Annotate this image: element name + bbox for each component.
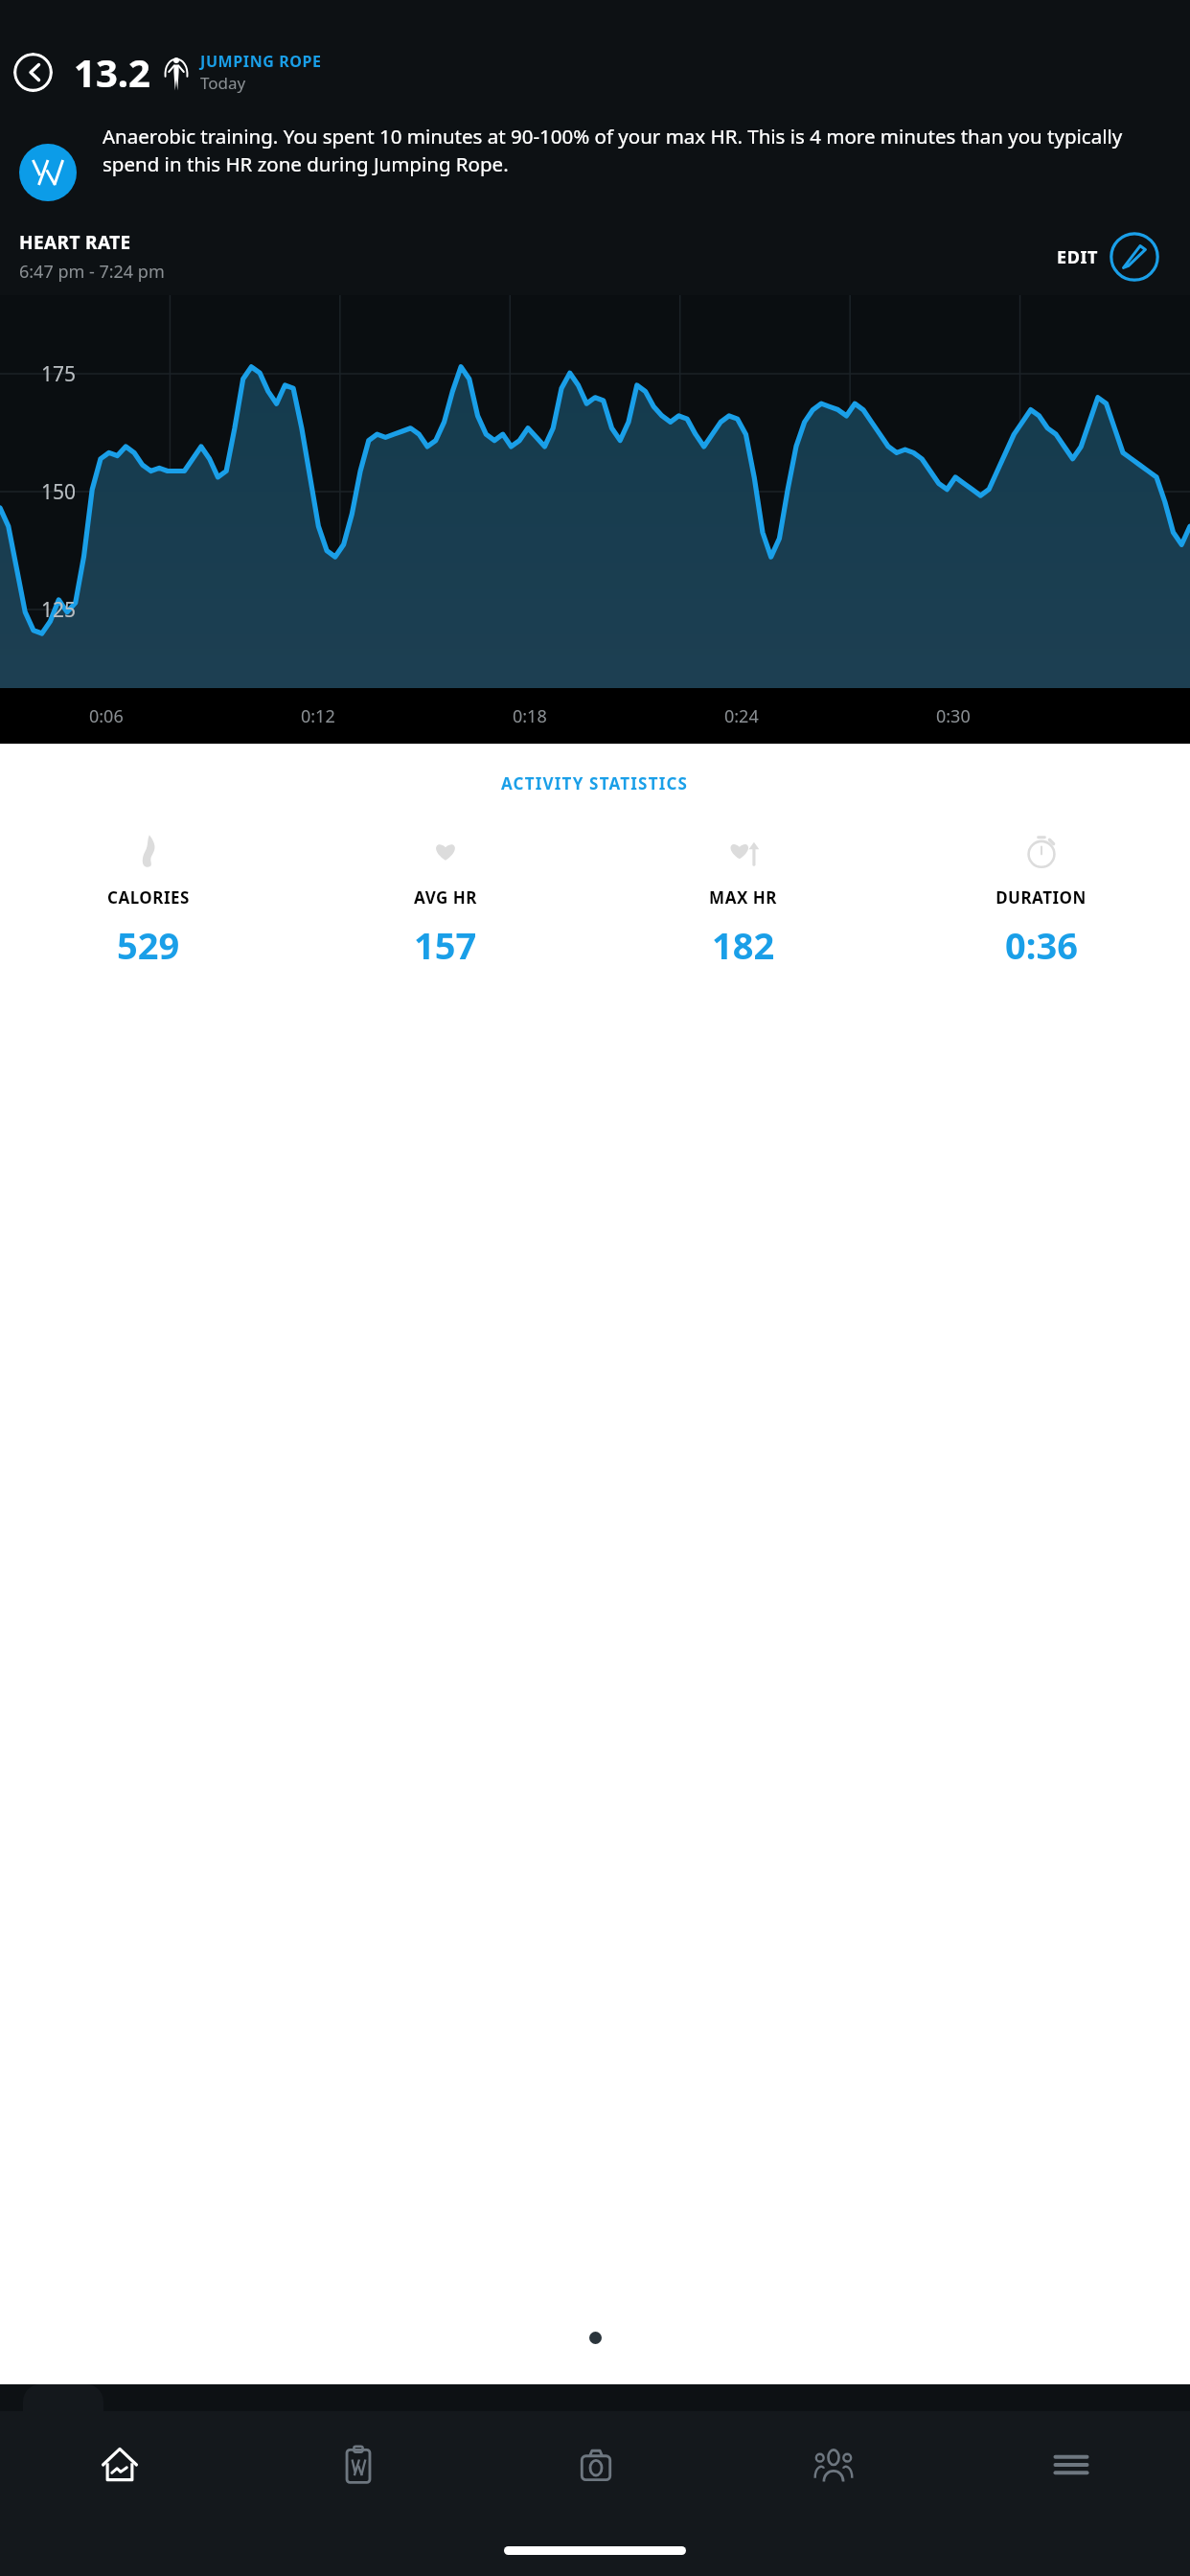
staticText: 529 xyxy=(117,920,180,970)
button[interactable]: Community xyxy=(715,2411,952,2518)
staticText: 175 xyxy=(41,360,77,388)
staticText: 0:18 xyxy=(513,704,547,728)
button[interactable]: EDIT xyxy=(1051,226,1165,287)
button[interactable]: CALORIES xyxy=(0,831,297,970)
staticText: DURATION xyxy=(995,886,1087,908)
staticText: Today xyxy=(200,72,246,94)
staticText: 182 xyxy=(712,920,775,970)
button[interactable]: Journal xyxy=(239,2411,477,2518)
staticText: 6:47 pm - 7:24 pm xyxy=(19,260,165,284)
staticText: AVG HR xyxy=(414,886,477,908)
button[interactable]: MAX HR xyxy=(594,831,892,970)
button[interactable]: Menu xyxy=(952,2411,1190,2518)
staticText: 157 xyxy=(414,920,477,970)
button[interactable]: DURATION xyxy=(892,831,1190,970)
staticText: Anaerobic training. You spent 10 minutes… xyxy=(103,123,1163,177)
staticText: MAX HR xyxy=(709,886,777,908)
staticText: 125 xyxy=(41,596,77,624)
staticText: JUMPING ROPE xyxy=(200,51,322,72)
staticText: CALORIES xyxy=(107,886,190,908)
button[interactable]: Camera xyxy=(477,2411,715,2518)
staticText: 150 xyxy=(41,478,77,506)
staticText: 0:36 xyxy=(1005,920,1078,970)
staticText: 13.2 xyxy=(74,46,150,98)
button[interactable]: Home xyxy=(0,2411,239,2518)
staticText: 0:24 xyxy=(724,704,759,728)
button[interactable]: AVG HR xyxy=(297,831,594,970)
staticText: ACTIVITY STATISTICS xyxy=(501,772,689,794)
staticText: HEART RATE xyxy=(19,230,131,255)
button[interactable]: Back xyxy=(13,53,53,92)
staticText: EDIT xyxy=(1057,245,1099,269)
staticText: 0:12 xyxy=(301,704,335,728)
staticText: 0:06 xyxy=(89,704,124,728)
staticText: 0:30 xyxy=(936,704,971,728)
